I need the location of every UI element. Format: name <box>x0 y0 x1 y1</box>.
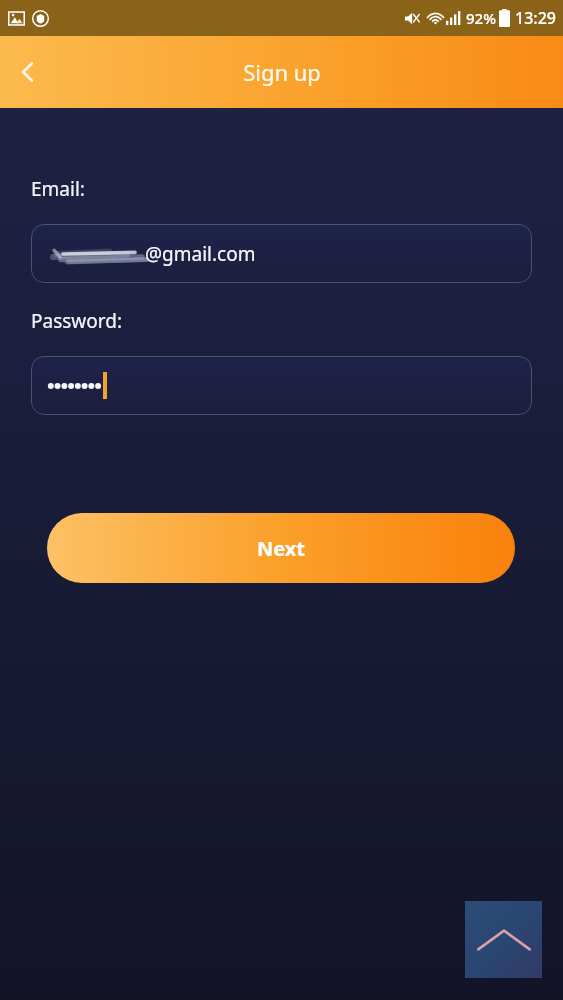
staticText: Email: <box>31 176 85 202</box>
staticText: 13:29 <box>515 7 556 29</box>
staticText: Password: <box>31 308 123 334</box>
staticText: @gmail.com <box>145 241 256 267</box>
button[interactable]: Hide keyboard <box>465 901 542 978</box>
staticText: Next <box>257 535 306 562</box>
button[interactable]: Back <box>0 44 56 100</box>
staticText: Sign up <box>243 57 321 87</box>
button[interactable]: @gmail.com <box>31 224 532 283</box>
staticText: 92% <box>466 8 496 28</box>
button[interactable]: Next <box>47 513 515 583</box>
button[interactable] <box>31 356 532 415</box>
